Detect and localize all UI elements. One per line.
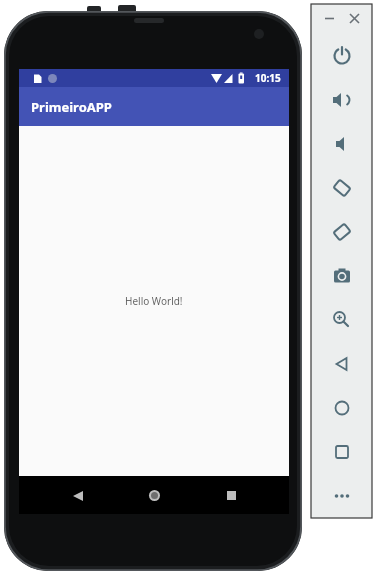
button[interactable] (311, 32, 372, 77)
button[interactable] (311, 77, 372, 122)
staticText: PrimeiroAPP (31, 98, 112, 116)
button[interactable] (344, 8, 364, 28)
button[interactable] (59, 477, 96, 514)
button[interactable] (311, 210, 372, 254)
button[interactable] (319, 8, 339, 28)
button[interactable] (311, 166, 372, 210)
button[interactable] (311, 254, 372, 298)
button[interactable]: PrimeiroAPP (19, 87, 289, 126)
staticText: 10:15 (255, 71, 281, 85)
button[interactable] (311, 122, 372, 166)
button[interactable] (311, 342, 372, 386)
button[interactable] (213, 477, 250, 514)
button[interactable] (311, 298, 372, 342)
button[interactable] (311, 474, 372, 518)
staticText: Hello World! (125, 294, 183, 308)
button[interactable] (311, 430, 372, 474)
button[interactable] (136, 477, 173, 514)
button[interactable] (311, 386, 372, 430)
